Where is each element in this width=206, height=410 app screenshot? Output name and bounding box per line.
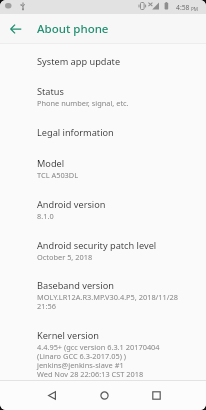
staticText: Android security patch level xyxy=(37,239,157,252)
staticText: Legal information xyxy=(37,126,114,139)
staticText: 8.1.0 xyxy=(37,211,54,221)
button[interactable]: Baseband version xyxy=(0,270,206,320)
button[interactable]: Status xyxy=(0,76,206,117)
button[interactable]: Android version xyxy=(0,189,206,230)
staticText: TCL A503DL xyxy=(37,170,79,180)
button[interactable]: Kernel version xyxy=(0,320,206,380)
staticText: Baseband version xyxy=(37,279,114,292)
button[interactable]: Home xyxy=(78,381,130,410)
staticText: Kernel version xyxy=(37,329,99,342)
staticText: 4.4.95+ (gcc version 6.3.1 20170404 (Lin… xyxy=(37,342,160,379)
button[interactable]: Navigate up xyxy=(0,14,31,43)
staticText: About phone xyxy=(37,21,109,37)
button[interactable]: Back xyxy=(26,381,78,410)
button[interactable]: System app update xyxy=(0,46,206,76)
staticText: Phone number, signal, etc. xyxy=(37,98,129,108)
staticText: Status xyxy=(37,85,64,98)
button[interactable]: Android security patch level xyxy=(0,230,206,270)
staticText: 4:58 xyxy=(176,3,190,12)
button[interactable]: Model xyxy=(0,148,206,189)
button[interactable]: Recent apps xyxy=(130,381,182,410)
staticText: PM xyxy=(191,6,198,12)
staticText: Android version xyxy=(37,198,106,211)
staticText: Model xyxy=(37,157,65,170)
staticText: MOLY.LR12A.R3.MP.V30.4.P5, 2018/11/28 21… xyxy=(37,292,179,311)
button[interactable]: Legal information xyxy=(0,117,206,148)
staticText: System app update xyxy=(37,55,121,68)
staticText: October 5, 2018 xyxy=(37,252,93,262)
